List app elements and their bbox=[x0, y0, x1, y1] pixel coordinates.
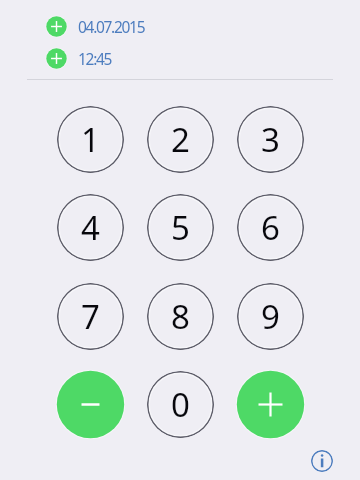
staticText: 4 bbox=[81, 205, 100, 250]
staticText: 12:45 bbox=[78, 48, 112, 69]
staticText: 6 bbox=[261, 205, 280, 250]
button[interactable]: 04.07.2015 bbox=[45, 12, 145, 40]
staticText: 1 bbox=[81, 117, 100, 162]
button[interactable]: 2 bbox=[147, 106, 214, 173]
button[interactable]: 0 bbox=[147, 371, 214, 438]
staticText: 2 bbox=[171, 117, 190, 162]
button[interactable]: 8 bbox=[147, 283, 214, 350]
button[interactable]: 3 bbox=[237, 106, 304, 173]
button[interactable]: Subtract entry bbox=[55, 369, 126, 440]
staticText: 3 bbox=[261, 117, 280, 162]
staticText: 04.07.2015 bbox=[78, 16, 145, 37]
staticText: 5 bbox=[171, 205, 190, 250]
button[interactable]: 9 bbox=[237, 283, 304, 350]
button[interactable]: 4 bbox=[57, 194, 124, 261]
button[interactable]: Add entry bbox=[235, 369, 306, 440]
button[interactable]: Info bbox=[311, 450, 333, 472]
button[interactable]: 7 bbox=[57, 283, 124, 350]
button[interactable]: 1 bbox=[57, 106, 124, 173]
staticText: 0 bbox=[171, 382, 190, 427]
staticText: 7 bbox=[81, 294, 100, 339]
button[interactable]: 5 bbox=[147, 194, 214, 261]
button[interactable]: 12:45 bbox=[45, 44, 112, 72]
button[interactable]: 6 bbox=[237, 194, 304, 261]
staticText: 9 bbox=[261, 294, 280, 339]
staticText: 8 bbox=[171, 294, 190, 339]
